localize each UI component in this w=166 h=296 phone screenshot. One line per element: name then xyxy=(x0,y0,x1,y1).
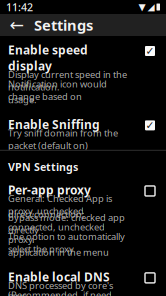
staticText: The option to automatically select the p… xyxy=(8,230,125,255)
staticText: bypass mode: checked app directly xyxy=(8,211,125,236)
staticText: 11:42 xyxy=(6,0,33,14)
staticText: direct connection; xyxy=(8,208,85,220)
staticText: ← xyxy=(9,15,24,35)
staticText: application in the menu xyxy=(8,246,109,258)
button[interactable]: Back xyxy=(4,14,30,36)
staticText: Enable Sniffing xyxy=(8,116,100,132)
staticText: Enable local DNS xyxy=(8,269,110,285)
staticText: connected, unchecked proxy. xyxy=(8,221,105,246)
staticText: Settings xyxy=(34,15,93,35)
staticText: (Recommended, if need routing Bypassing xyxy=(8,289,112,296)
staticText: Try sniff domain from the packet (defaul… xyxy=(8,127,118,151)
staticText: usage. xyxy=(8,93,37,106)
staticText: VPN Settings xyxy=(8,160,78,174)
button[interactable]: Enable Sniffing xyxy=(0,110,166,150)
staticText: Enable speed display xyxy=(8,42,88,74)
staticText: ◢ xyxy=(147,2,154,12)
staticText: ✓ xyxy=(145,45,154,57)
staticText: Notification icon would change based on xyxy=(8,78,107,102)
staticText: ✓ xyxy=(145,119,154,131)
staticText: DNS processed by core's DNS module xyxy=(8,279,113,296)
staticText: Display current speed in the notificatio… xyxy=(8,68,127,93)
button[interactable]: Enable speed display xyxy=(0,36,166,110)
button[interactable]: Per-app proxy xyxy=(0,176,166,263)
staticText: Per-app proxy xyxy=(8,182,91,198)
staticText: ▼ xyxy=(138,2,145,12)
button[interactable]: Enable local DNS xyxy=(0,263,166,296)
staticText: General: Checked App is proxy, unchecked xyxy=(8,192,112,217)
